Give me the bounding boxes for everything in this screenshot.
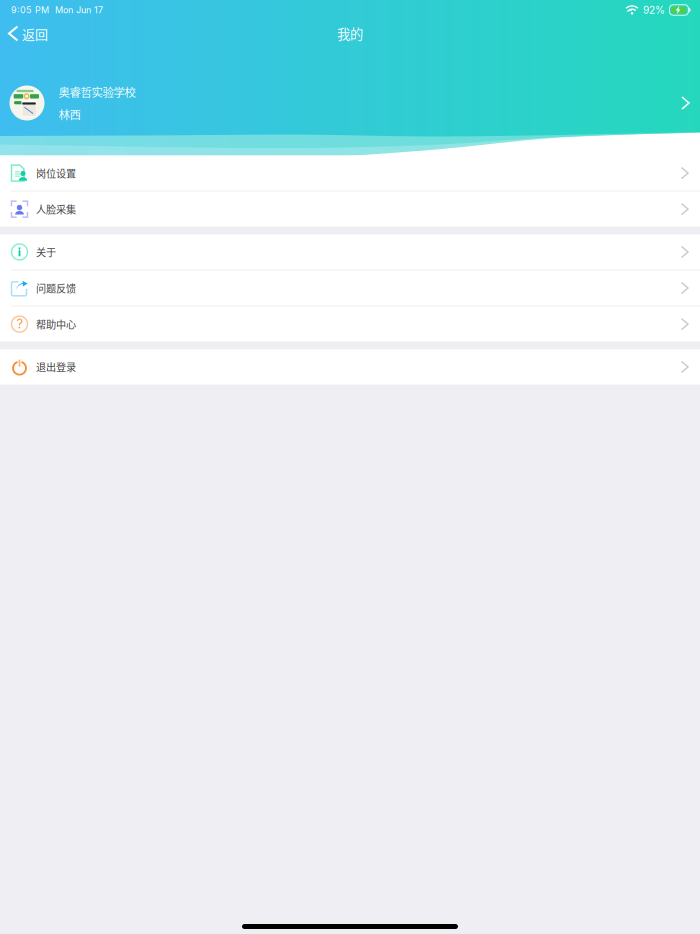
- staticText: 返回: [22, 24, 48, 43]
- staticText: 岗位设置: [36, 166, 76, 180]
- staticText: ?: [16, 316, 22, 331]
- button[interactable]: 返回: [0, 20, 60, 47]
- button[interactable]: 人脸采集: [0, 192, 700, 227]
- staticText: 帮助中心: [36, 317, 76, 331]
- staticText: Mon Jun 17: [55, 4, 103, 15]
- staticText: 关于: [36, 245, 56, 259]
- staticText: 9:05 PM: [11, 4, 49, 15]
- staticText: 奥睿哲实验学校: [58, 83, 135, 100]
- staticText: 问题反馈: [36, 281, 76, 295]
- staticText: 人脸采集: [36, 202, 76, 216]
- button[interactable]: 岗位设置: [0, 155, 700, 191]
- staticText: 林西: [58, 106, 80, 123]
- staticText: 我的: [337, 24, 363, 43]
- button[interactable]: 退出登录: [0, 349, 700, 384]
- staticText: 92%: [643, 4, 665, 16]
- button[interactable]: 奥睿哲实验学校: [0, 85, 700, 121]
- button[interactable]: ?: [0, 307, 700, 342]
- staticText: 退出登录: [36, 360, 76, 374]
- button[interactable]: 问题反馈: [0, 270, 700, 306]
- button[interactable]: 关于: [0, 234, 700, 269]
